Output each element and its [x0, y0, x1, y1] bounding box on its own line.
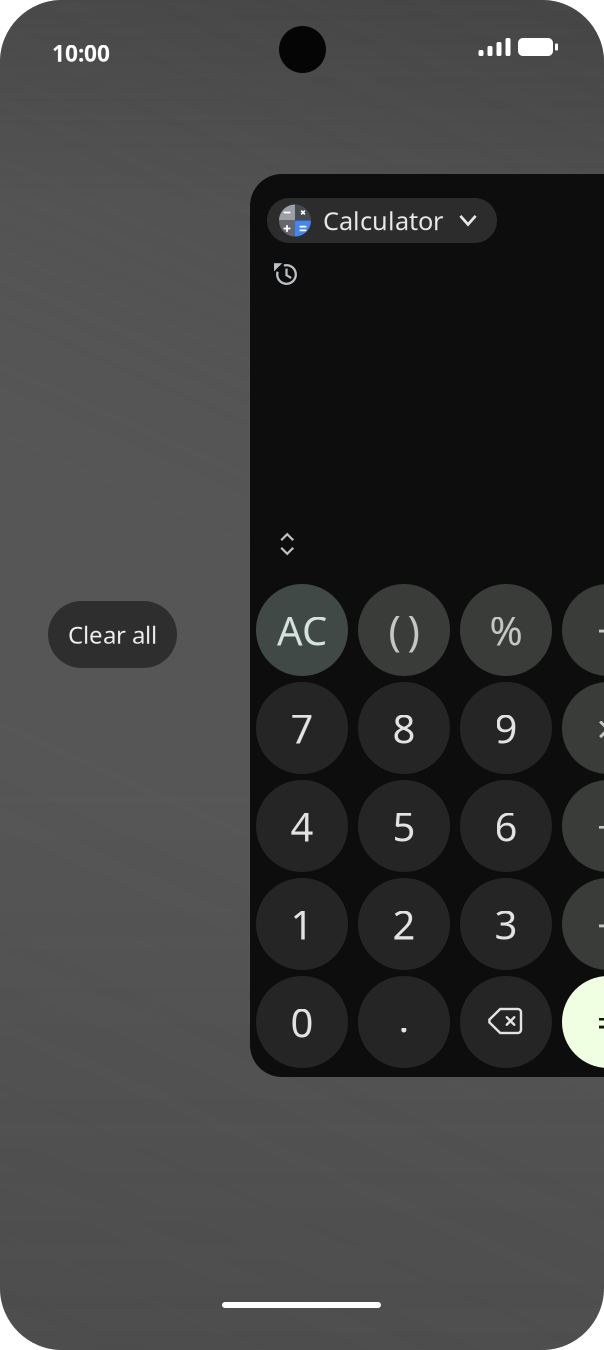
staticText: 7 — [290, 701, 313, 754]
staticText: . — [398, 990, 409, 1043]
staticText: 8 — [392, 701, 415, 754]
button[interactable]: 2 — [358, 878, 450, 970]
button[interactable]: 4 — [256, 780, 348, 872]
staticText: AC — [277, 603, 327, 656]
button[interactable]: − — [562, 780, 604, 872]
staticText: Calculator — [323, 204, 443, 237]
button[interactable]: 8 — [358, 682, 450, 774]
button[interactable]: ( ) — [358, 584, 450, 676]
button[interactable]: Expand keypad — [269, 526, 305, 562]
button[interactable]: . — [358, 976, 450, 1068]
button[interactable]: 0 — [256, 976, 348, 1068]
staticText: 2 — [392, 897, 415, 950]
button[interactable]: 5 — [358, 780, 450, 872]
staticText: % — [489, 603, 522, 656]
button[interactable]: + — [562, 878, 604, 970]
staticText: 6 — [494, 799, 517, 852]
button[interactable]: AC — [256, 584, 348, 676]
button[interactable]: × — [562, 682, 604, 774]
button[interactable]: ÷ — [562, 584, 604, 676]
staticText: 3 — [494, 897, 517, 950]
button[interactable]: Clear all — [48, 601, 177, 668]
button[interactable]: 6 — [460, 780, 552, 872]
staticText: 0 — [290, 995, 313, 1048]
button[interactable]: History — [266, 254, 306, 294]
staticText: 4 — [290, 799, 313, 852]
staticText: 1 — [290, 897, 313, 950]
staticText: ( ) — [388, 603, 419, 657]
staticText: × — [596, 701, 604, 754]
button[interactable]: = — [562, 976, 604, 1068]
staticText: = — [596, 995, 604, 1048]
button[interactable]: Delete — [460, 976, 552, 1068]
staticText: Clear all — [68, 619, 157, 650]
staticText: + — [596, 897, 604, 950]
staticText: − — [596, 799, 604, 852]
button[interactable]: 1 — [256, 878, 348, 970]
staticText: 5 — [392, 799, 415, 852]
button[interactable]: Calculator — [267, 198, 497, 243]
button[interactable]: 7 — [256, 682, 348, 774]
staticText: 9 — [494, 701, 517, 754]
button[interactable]: 3 — [460, 878, 552, 970]
staticText: ÷ — [596, 603, 604, 656]
button[interactable]: % — [460, 584, 552, 676]
staticText: 10:00 — [52, 38, 110, 68]
button[interactable]: 9 — [460, 682, 552, 774]
